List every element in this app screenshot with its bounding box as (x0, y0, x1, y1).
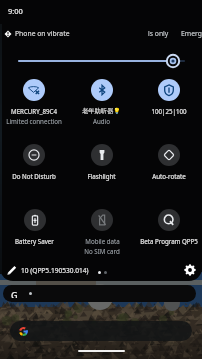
staticText: Auto-rotate (152, 172, 186, 180)
button[interactable]: Beta Program QPP5 (135, 202, 202, 267)
staticText: Do Not Disturb (12, 172, 56, 180)
button[interactable]: Edit tiles (5, 263, 19, 277)
staticText: MERCURY_89C4 (11, 107, 57, 115)
staticText: Limited connection (6, 117, 62, 125)
staticText: Battery Saver (15, 237, 54, 245)
staticText: Mobile data (85, 237, 120, 245)
button[interactable] (0, 52, 202, 70)
staticText: Flashlight (87, 172, 116, 180)
staticText: 老年助听器💡 (82, 107, 121, 115)
button[interactable]: Auto-rotate (135, 137, 202, 202)
staticText: Audio (93, 117, 110, 125)
button[interactable]: Settings (182, 262, 198, 278)
button[interactable]: Mobile data (68, 202, 135, 267)
staticText: Phone on vibrate (15, 29, 70, 38)
button[interactable]: 老年助听器💡 (68, 72, 135, 137)
staticText: No SIM card (84, 247, 120, 255)
staticText: G (11, 289, 18, 298)
button[interactable]: Google Search (10, 321, 192, 341)
button[interactable]: G (3, 285, 196, 302)
button[interactable]: ls only (145, 27, 172, 40)
staticText: Beta Program QPP5 (140, 237, 198, 245)
staticText: ls only (148, 29, 169, 38)
button[interactable]: Flashlight (68, 137, 135, 202)
staticText: Emerg (181, 29, 202, 38)
other: Google Search (19, 327, 28, 336)
button[interactable]: Emerg (181, 27, 202, 40)
staticText: 9:00 (8, 6, 23, 16)
button[interactable]: MERCURY_89C4 (0, 72, 68, 137)
button[interactable]: Do Not Disturb (0, 137, 68, 202)
button[interactable]: 100|25|100 (135, 72, 202, 137)
button[interactable]: Battery Saver (0, 202, 68, 267)
staticText: 10 (QPP5.190530.014) (21, 266, 89, 275)
staticText: 100|25|100 (151, 107, 187, 115)
